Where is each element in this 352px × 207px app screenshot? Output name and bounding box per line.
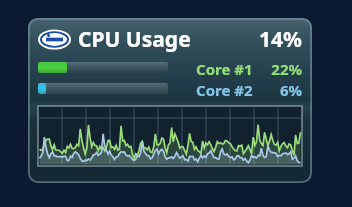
staticText: Core #2: [196, 80, 253, 97]
button[interactable]: Intel logo: [38, 28, 71, 51]
button[interactable]: Core #1: [38, 59, 302, 76]
staticText: Core #1: [196, 59, 253, 76]
staticText: 14%: [259, 25, 302, 54]
staticText: 6%: [262, 80, 302, 97]
staticText: CPU Usage: [78, 25, 191, 54]
button[interactable]: Core #2: [38, 80, 302, 97]
button[interactable]: Intel logo: [28, 18, 312, 183]
button[interactable]: CPU usage history graph: [38, 106, 302, 166]
staticText: 22%: [262, 59, 302, 76]
